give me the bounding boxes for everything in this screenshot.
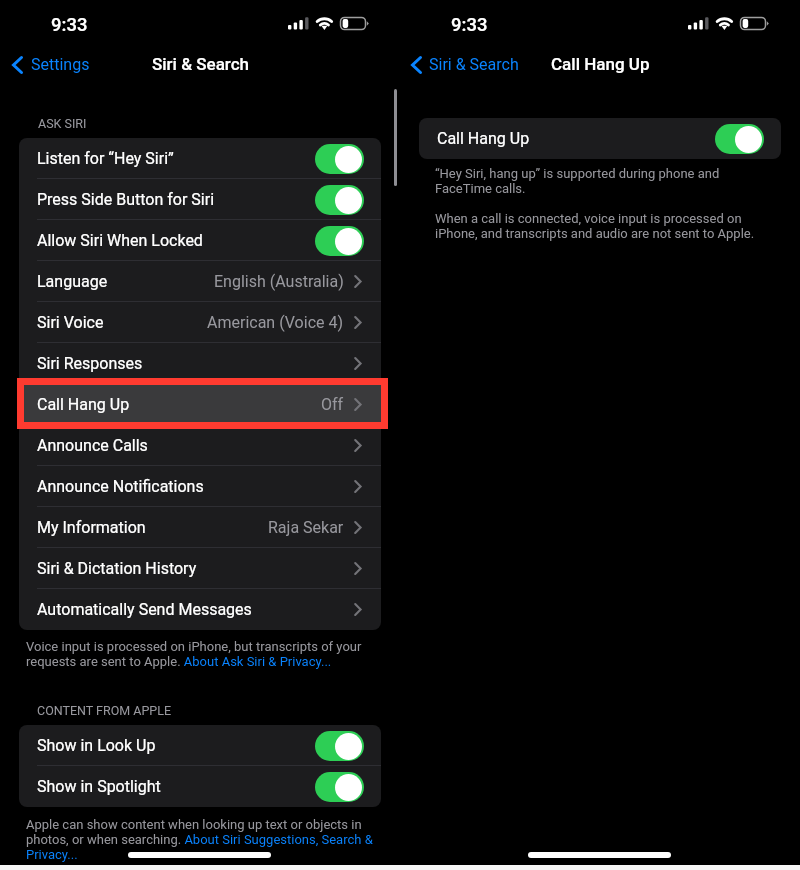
button[interactable]: Show in Spotlight [19,766,381,807]
staticText: Show in Spotlight [37,777,161,796]
staticText: Off [321,395,344,414]
button[interactable]: Toggle switch [315,226,364,256]
staticText: Raja Sekar [268,518,344,537]
button[interactable]: Toggle switch [315,185,364,215]
button[interactable]: Siri Voice [19,302,381,343]
staticText: Voice input is processed on iPhone, but … [26,639,378,669]
button[interactable]: Toggle switch [315,731,364,761]
button[interactable]: Announce Calls [19,425,381,466]
button[interactable]: Siri & Dictation History [19,548,381,589]
staticText: Language [37,272,108,291]
button[interactable]: Automatically Send Messages [19,589,381,630]
button[interactable]: Show in Look Up [19,725,381,766]
staticText: Settings [31,55,90,74]
staticText: Automatically Send Messages [37,600,252,619]
staticText: Call Hang Up [437,129,530,148]
staticText: Siri & Search [429,55,519,74]
staticText: When a call is connected, voice input is… [435,211,765,241]
staticText: Siri Voice [37,313,104,332]
staticText: 9:33 [451,14,488,36]
staticText: Apple can show content when looking up t… [26,817,378,862]
button[interactable]: Toggle switch [315,144,364,174]
button[interactable]: Siri & Search [411,52,525,77]
staticText: My Information [37,518,146,537]
staticText: Call Hang Up [551,54,650,74]
button[interactable]: My Information [19,507,381,548]
button[interactable]: Settings [12,52,96,77]
staticText: “Hey Siri, hang up” is supported during … [435,166,755,196]
staticText: CONTENT FROM APPLE [37,703,172,718]
button[interactable]: Language [19,261,381,302]
staticText: Press Side Button for Siri [37,190,215,209]
staticText: ASK SIRI [38,116,87,131]
staticText: Siri & Search [152,54,250,74]
staticText: Announce Notifications [37,477,204,496]
button[interactable]: Toggle switch [715,124,764,154]
staticText: Call Hang Up [37,395,130,414]
button[interactable]: Announce Notifications [19,466,381,507]
staticText: Siri Responses [37,354,143,373]
button[interactable]: Siri Responses [19,343,381,384]
button[interactable]: Press Side Button for Siri [19,179,381,220]
staticText: Announce Calls [37,436,148,455]
button[interactable]: Call Hang Up [419,118,781,159]
staticText: Siri & Dictation History [37,559,197,578]
staticText: Listen for “Hey Siri” [37,149,174,168]
staticText: English (Australia) [214,272,344,291]
button[interactable]: Call Hang Up [19,384,381,425]
button[interactable]: Allow Siri When Locked [19,220,381,261]
button[interactable]: Toggle switch [315,772,364,802]
staticText: American (Voice 4) [207,313,344,332]
button[interactable]: Listen for “Hey Siri” [19,138,381,179]
staticText: 9:33 [51,14,88,36]
staticText: Show in Look Up [37,736,156,755]
staticText: Allow Siri When Locked [37,231,203,250]
